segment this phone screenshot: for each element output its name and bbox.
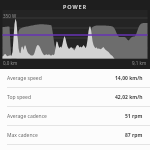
staticText: 51 rpm [125,113,143,120]
staticText: 87 rpm [125,132,143,139]
staticText: 42,02 km/h [115,94,143,101]
button[interactable]: Average speed [0,69,150,88]
staticText: Average cadence [7,113,47,120]
staticText: 14,00 km/h [115,75,143,82]
staticText: 9,1 km [132,60,147,66]
button[interactable]: Top speed [0,88,150,107]
staticText: Max cadence [7,132,38,139]
button[interactable]: Average cadence [0,107,150,126]
button[interactable]: Max cadence [0,126,150,145]
staticText: Top speed [7,94,32,101]
staticText: 350 W [3,13,17,19]
staticText: 0,0 km [3,60,18,66]
staticText: Average speed [7,75,42,82]
staticText: POWER [63,3,87,10]
